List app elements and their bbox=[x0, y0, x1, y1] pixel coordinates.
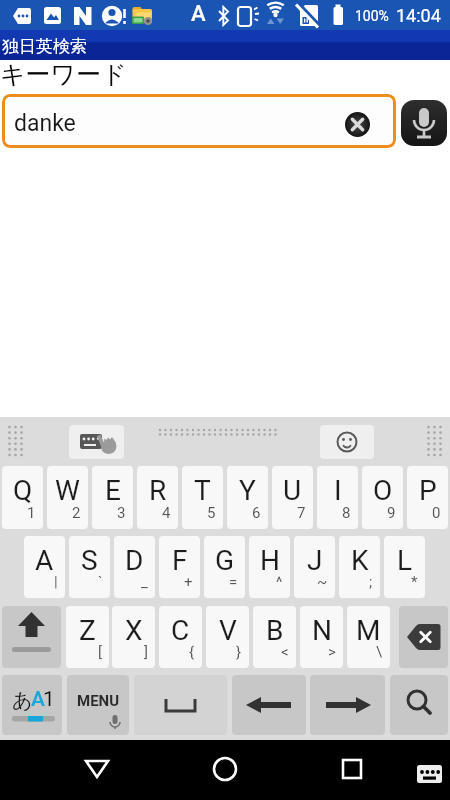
staticText: Y bbox=[239, 474, 256, 507]
button[interactable] bbox=[399, 606, 448, 668]
button[interactable]: W bbox=[47, 466, 88, 529]
button[interactable] bbox=[401, 100, 447, 146]
staticText: K bbox=[351, 544, 369, 577]
button[interactable]: V bbox=[206, 606, 249, 668]
button[interactable] bbox=[405, 745, 450, 793]
button[interactable]: R bbox=[137, 466, 178, 529]
button[interactable]: N bbox=[300, 606, 343, 668]
button[interactable] bbox=[73, 745, 121, 793]
staticText: Q bbox=[13, 474, 33, 507]
staticText: } bbox=[236, 643, 242, 661]
staticText: N bbox=[312, 614, 332, 647]
staticText: * bbox=[411, 573, 418, 591]
staticText: 14:04 bbox=[396, 5, 441, 26]
staticText: A bbox=[191, 1, 206, 27]
staticText: _ bbox=[141, 573, 148, 591]
button[interactable]: Y bbox=[227, 466, 268, 529]
staticText: T bbox=[194, 474, 211, 507]
staticText: U bbox=[283, 474, 302, 507]
button[interactable]: U bbox=[272, 466, 313, 529]
staticText: P bbox=[419, 474, 437, 507]
staticText: + bbox=[184, 573, 193, 591]
staticText: 7 bbox=[297, 504, 306, 522]
button[interactable]: danke bbox=[2, 94, 396, 148]
staticText: F bbox=[172, 544, 188, 577]
button[interactable] bbox=[69, 425, 124, 459]
button[interactable]: P bbox=[407, 466, 448, 529]
staticText: ; bbox=[369, 573, 373, 591]
button[interactable] bbox=[232, 675, 306, 735]
staticText: 0 bbox=[432, 504, 441, 522]
button[interactable]: B bbox=[253, 606, 296, 668]
staticText: M bbox=[356, 614, 381, 647]
staticText: O bbox=[373, 474, 393, 507]
staticText: 1 bbox=[43, 687, 55, 712]
button[interactable]: I bbox=[317, 466, 358, 529]
staticText: ] bbox=[144, 643, 148, 661]
button[interactable]: S bbox=[69, 536, 110, 598]
button[interactable] bbox=[310, 675, 385, 735]
staticText: W bbox=[55, 474, 80, 507]
staticText: { bbox=[189, 643, 195, 661]
button[interactable]: C bbox=[159, 606, 202, 668]
button[interactable] bbox=[328, 745, 376, 793]
staticText: A bbox=[35, 544, 54, 577]
button[interactable]: D bbox=[114, 536, 155, 598]
staticText: B bbox=[266, 614, 284, 647]
staticText: G bbox=[215, 544, 235, 577]
staticText: 8 bbox=[342, 504, 351, 522]
staticText: I bbox=[334, 474, 342, 507]
button[interactable]: X bbox=[112, 606, 155, 668]
button[interactable]: あ bbox=[2, 675, 62, 735]
staticText: X bbox=[125, 614, 143, 647]
button[interactable]: A bbox=[24, 536, 65, 598]
staticText: = bbox=[229, 573, 238, 591]
button[interactable]: Q bbox=[2, 466, 43, 529]
button[interactable] bbox=[390, 675, 448, 735]
button[interactable]: T bbox=[182, 466, 223, 529]
button[interactable] bbox=[345, 112, 370, 137]
staticText: 4 bbox=[162, 504, 171, 522]
button[interactable]: J bbox=[294, 536, 335, 598]
staticText: [ bbox=[98, 643, 102, 661]
button[interactable]: M bbox=[347, 606, 390, 668]
staticText: < bbox=[281, 643, 289, 661]
button[interactable]: G bbox=[204, 536, 245, 598]
staticText: ~ bbox=[317, 573, 328, 591]
button[interactable]: F bbox=[159, 536, 200, 598]
staticText: H bbox=[260, 544, 280, 577]
staticText: 3 bbox=[117, 504, 126, 522]
staticText: danke bbox=[14, 110, 76, 137]
staticText: C bbox=[171, 614, 190, 647]
button[interactable]: O bbox=[362, 466, 403, 529]
staticText: S bbox=[81, 544, 98, 577]
staticText: キーワード bbox=[0, 59, 127, 90]
button[interactable]: E bbox=[92, 466, 133, 529]
button[interactable]: MENU bbox=[67, 675, 129, 735]
staticText: A bbox=[31, 687, 45, 712]
staticText: 100% bbox=[355, 8, 389, 24]
staticText: 9 bbox=[387, 504, 396, 522]
staticText: MENU bbox=[77, 692, 120, 710]
button[interactable]: L bbox=[384, 536, 425, 598]
button[interactable] bbox=[320, 425, 374, 459]
staticText: 1 bbox=[27, 504, 36, 522]
button[interactable]: K bbox=[339, 536, 380, 598]
button[interactable] bbox=[2, 606, 61, 668]
button[interactable]: H bbox=[249, 536, 290, 598]
staticText: 独日英検索 bbox=[2, 36, 87, 57]
staticText: ^ bbox=[276, 573, 283, 591]
staticText: | bbox=[54, 573, 58, 591]
button[interactable]: Z bbox=[66, 606, 109, 668]
staticText: ` bbox=[98, 573, 103, 591]
staticText: D bbox=[125, 544, 144, 577]
button[interactable] bbox=[134, 675, 227, 735]
staticText: あ bbox=[12, 688, 33, 713]
staticText: > bbox=[328, 643, 336, 661]
staticText: R bbox=[149, 474, 167, 507]
button[interactable] bbox=[201, 745, 249, 793]
staticText: Z bbox=[79, 614, 96, 647]
staticText: \ bbox=[376, 643, 383, 661]
staticText: 6 bbox=[252, 504, 261, 522]
staticText: V bbox=[219, 614, 237, 647]
